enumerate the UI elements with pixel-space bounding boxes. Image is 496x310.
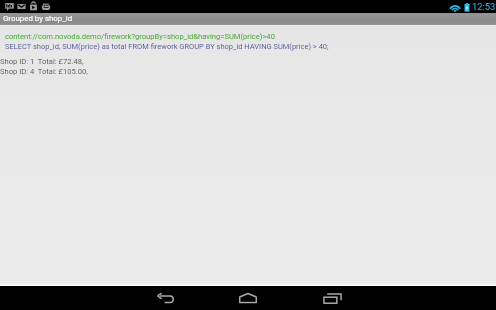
staticText: Grouped by shop_id	[3, 14, 73, 23]
button[interactable]: Home	[206, 286, 290, 310]
button[interactable]: Back	[124, 286, 208, 310]
staticText: Shop ID: 1 Total: £72.48,	[0, 57, 84, 66]
button[interactable]: Recent apps	[290, 286, 374, 310]
staticText: 12:53	[472, 1, 496, 12]
staticText: SELECT shop_id, SUM(price) as total FROM…	[5, 42, 329, 51]
staticText: content://com.novoda.demo/firework?group…	[5, 32, 275, 41]
staticText: Shop ID: 4 Total: £105.00,	[0, 67, 88, 76]
